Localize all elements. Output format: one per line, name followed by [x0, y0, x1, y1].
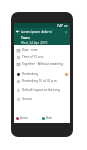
staticText: Together · Without meaning: [22, 62, 63, 66]
button[interactable]: Date · time: [14, 47, 70, 53]
staticText: Reminding: [22, 72, 38, 76]
button[interactable]: Reminding 10 of 30 p.m.: [14, 78, 70, 84]
button[interactable]: Reminding: [14, 71, 70, 77]
button[interactable]: Together · Without meaning: [14, 61, 70, 67]
button[interactable]: Anna: [16, 116, 42, 120]
staticText: Anna: [20, 116, 28, 120]
staticText: Guests: [22, 97, 32, 101]
button[interactable]: More options: [63, 29, 69, 35]
button[interactable]: Back: [14, 28, 21, 35]
staticText: Time of 10 a.m.: [22, 55, 45, 59]
button[interactable]: Bob: [42, 116, 68, 120]
button[interactable]: Guests: [14, 96, 70, 102]
staticText: Wed, 24 Apr 2019: [21, 41, 48, 45]
staticText: 7:47: [57, 24, 63, 28]
button[interactable]: Default Layout at the long Tahoe: [14, 87, 70, 93]
staticText: Reminding 10 of 30 p.m.: [22, 79, 58, 83]
staticText: Team: [21, 35, 30, 40]
staticText: Default Layout at the long Tahoe: [22, 88, 68, 92]
staticText: Lorem ipsum dolor si: [21, 30, 52, 34]
staticText: Bob: [46, 116, 52, 120]
button[interactable]: Time of 10 a.m.: [14, 54, 70, 60]
staticText: Date · time: [22, 48, 38, 52]
